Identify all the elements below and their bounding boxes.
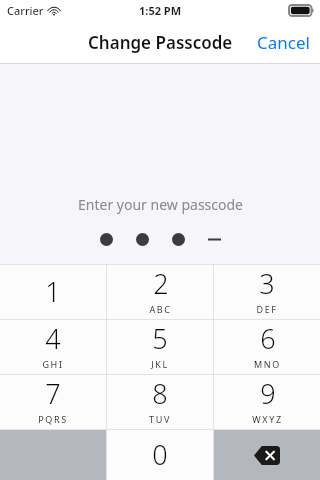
button[interactable]: 0 xyxy=(107,430,213,480)
staticText: Change Passcode xyxy=(88,31,233,54)
staticText: PQRS xyxy=(38,413,68,425)
staticText: MNO xyxy=(254,358,281,370)
button[interactable]: Delete xyxy=(214,430,320,480)
staticText: Cancel xyxy=(257,31,310,54)
button[interactable]: 8 xyxy=(107,375,213,429)
staticText: 6 xyxy=(260,320,276,357)
staticText: 4 xyxy=(45,320,61,357)
staticText: 8 xyxy=(152,375,168,412)
staticText: JKL xyxy=(151,358,169,370)
button[interactable]: 1 xyxy=(0,265,106,319)
staticText: 9 xyxy=(260,375,276,412)
staticText: Enter your new passcode xyxy=(78,195,243,214)
button[interactable]: 6 xyxy=(214,320,320,374)
button[interactable]: Cancel xyxy=(247,23,320,62)
staticText: 0 xyxy=(152,436,168,473)
button[interactable]: 4 xyxy=(0,320,106,374)
staticText: 1 xyxy=(45,273,61,310)
staticText: 5 xyxy=(152,320,168,357)
button[interactable]: 3 xyxy=(214,265,320,319)
staticText: TUV xyxy=(149,413,171,425)
staticText: 2 xyxy=(153,265,169,302)
button[interactable]: 2 xyxy=(107,265,213,319)
staticText: ABC xyxy=(149,303,172,315)
staticText: 7 xyxy=(45,375,61,412)
button[interactable]: 5 xyxy=(107,320,213,374)
staticText: DEF xyxy=(256,303,278,315)
button[interactable]: 9 xyxy=(214,375,320,429)
staticText: 1:52 PM xyxy=(139,3,182,18)
staticText: Carrier xyxy=(7,3,44,18)
staticText: 3 xyxy=(259,265,275,302)
staticText: GHI xyxy=(42,358,64,370)
button[interactable]: 7 xyxy=(0,375,106,429)
staticText: WXYZ xyxy=(252,413,283,425)
